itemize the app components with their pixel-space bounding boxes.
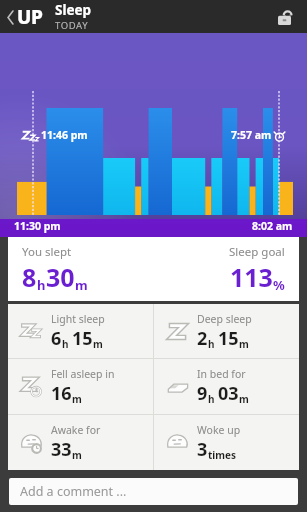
staticText: UP xyxy=(17,4,43,30)
staticText: Add a comment ... xyxy=(20,483,127,500)
button[interactable]: Awake for xyxy=(8,415,153,470)
button[interactable]: Privacy unlocked xyxy=(271,4,297,30)
staticText: times xyxy=(208,448,237,462)
staticText: 113 xyxy=(230,260,273,294)
staticText: m xyxy=(239,392,249,406)
staticText: 15 xyxy=(218,326,239,351)
staticText: Light sleep xyxy=(51,312,105,326)
staticText: 11:46 pm xyxy=(41,128,88,142)
staticText: You slept xyxy=(22,244,72,260)
staticText: h xyxy=(208,337,215,351)
staticText: 9 xyxy=(197,381,208,406)
staticText: Deep sleep xyxy=(197,312,252,326)
staticText: TODAY xyxy=(55,19,89,32)
button[interactable]: In bed for xyxy=(154,359,299,414)
staticText: % xyxy=(273,276,285,294)
staticText: 30 xyxy=(46,260,75,294)
staticText: Fell asleep in xyxy=(51,367,115,381)
button[interactable]: Fell asleep in xyxy=(8,359,153,414)
button[interactable]: Add a comment ... xyxy=(9,478,298,505)
staticText: m xyxy=(72,448,82,462)
staticText: m xyxy=(239,337,249,351)
staticText: h xyxy=(62,337,69,351)
button[interactable]: Light sleep xyxy=(8,304,153,358)
staticText: In bed for xyxy=(197,367,246,381)
staticText: 03 xyxy=(218,381,239,406)
staticText: Awake for xyxy=(51,423,101,437)
staticText: 6 xyxy=(51,326,62,351)
button[interactable]: Woke up xyxy=(154,415,299,470)
staticText: m xyxy=(93,337,103,351)
button[interactable]: You slept xyxy=(8,237,299,301)
button[interactable]: Deep sleep xyxy=(154,304,299,358)
staticText: Sleep xyxy=(55,1,92,19)
staticText: 2 xyxy=(197,326,208,351)
staticText: Woke up xyxy=(197,423,241,437)
staticText: 7:57 am xyxy=(231,128,272,142)
staticText: 15 xyxy=(72,326,93,351)
staticText: m xyxy=(75,276,88,294)
staticText: h xyxy=(37,276,46,294)
staticText: 16 xyxy=(51,381,72,406)
staticText: h xyxy=(208,392,215,406)
staticText: Sleep goal xyxy=(229,244,285,260)
staticText: 33 xyxy=(51,437,72,462)
staticText: 3 xyxy=(197,437,208,462)
staticText: 11:30 pm xyxy=(14,219,61,233)
staticText: 8:02 am xyxy=(252,219,293,233)
staticText: m xyxy=(72,392,82,406)
staticText: 8 xyxy=(22,260,37,294)
button[interactable]: Back to UP xyxy=(4,4,46,30)
